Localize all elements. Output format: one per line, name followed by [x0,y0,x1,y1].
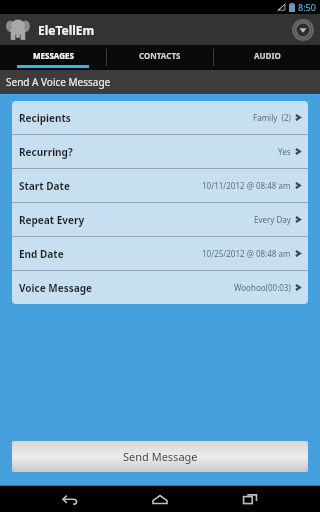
button[interactable]: End Date [12,237,308,270]
button[interactable]: CONTACTS [107,45,213,70]
button[interactable]: Start Date [12,169,308,202]
staticText: Send A Voice Message [6,75,111,89]
staticText: Yes [278,146,291,157]
button[interactable]: Voice Message [12,271,308,304]
staticText: MESSAGES [33,50,74,61]
staticText: Recipients [19,111,71,125]
staticText: AUDIO [254,50,281,61]
button[interactable]: Home [140,487,180,511]
staticText: EleTellEm [38,22,95,38]
staticText: Send Message [123,449,198,464]
staticText: Woohoo(00:03) [234,282,291,293]
button[interactable]: MESSAGES [0,45,106,70]
staticText: 10/25/2012 @ 08:48 am [202,248,291,259]
staticText: 10/11/2012 @ 08:48 am [202,180,291,191]
staticText: Voice Message [19,281,92,295]
button[interactable]: More options [292,19,314,41]
button[interactable]: Recent apps [230,487,270,511]
staticText: CONTACTS [139,50,181,61]
staticText: Family (2) [253,112,291,123]
staticText: Every Day [254,214,291,225]
button[interactable]: Back [50,487,90,511]
button[interactable]: Recipients [12,101,308,134]
button[interactable]: Send Message [12,441,308,472]
staticText: Repeat Every [19,213,85,227]
button[interactable]: Recurring? [12,135,308,168]
staticText: Recurring? [19,145,73,159]
button[interactable]: AUDIO [214,45,320,70]
button[interactable]: Repeat Every [12,203,308,236]
staticText: Start Date [19,179,70,193]
staticText: 8:50 [298,1,316,13]
staticText: End Date [19,247,64,261]
